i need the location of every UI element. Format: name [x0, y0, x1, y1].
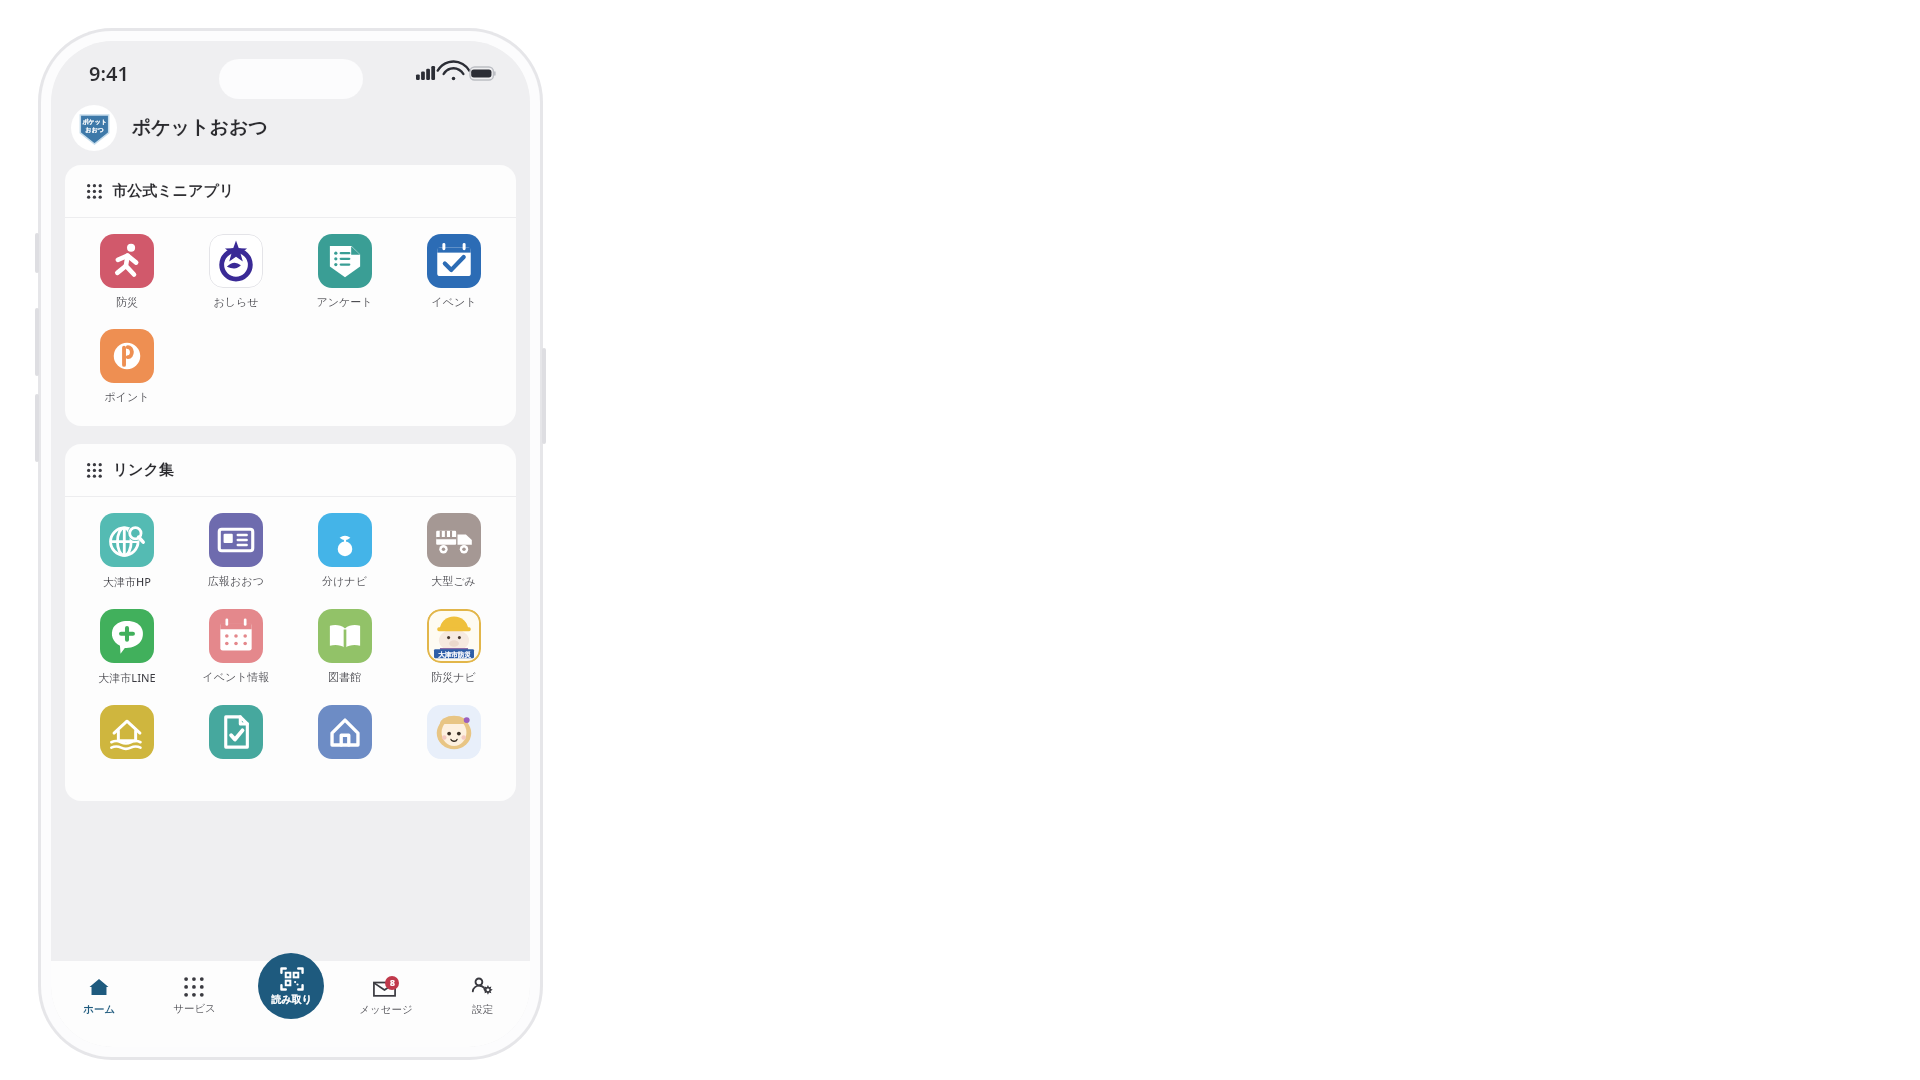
button[interactable]: アンケート [290, 232, 399, 311]
staticText: 設定 [472, 1003, 493, 1016]
button[interactable]: ポイント [73, 327, 181, 406]
staticText: 広報おおつ [208, 574, 264, 588]
button[interactable]: 大津市LINE [73, 607, 181, 687]
staticText: 大型ごみ [431, 574, 476, 588]
staticText: ポイント [104, 390, 150, 404]
button[interactable]: 図書館 [290, 607, 399, 686]
staticText: イベント [431, 295, 477, 309]
staticText: リンク集 [112, 461, 174, 480]
button[interactable]: ホーム [51, 961, 146, 1031]
button[interactable]: 8 [338, 961, 434, 1031]
button[interactable]: 大津市防災 [399, 607, 508, 686]
button[interactable]: サービス [146, 961, 242, 1031]
button[interactable]: イベント情報 [181, 607, 290, 686]
staticText: サービス [173, 1002, 216, 1015]
button[interactable] [399, 703, 508, 761]
staticText: 大津市LINE [98, 670, 156, 685]
button[interactable] [73, 703, 181, 761]
button[interactable]: 大型ごみ [399, 511, 508, 590]
staticText: おしらせ [213, 295, 259, 309]
staticText: おおつ [85, 126, 104, 134]
staticText: ポケットおおつ [131, 116, 268, 140]
button[interactable]: 分けナビ [290, 511, 399, 590]
staticText: 防災ナビ [431, 670, 476, 684]
button[interactable]: 読み取り [258, 953, 324, 1019]
staticText: 大津市HP [103, 574, 151, 589]
staticText: 分けナビ [322, 574, 367, 588]
button[interactable]: 大津市HP [73, 511, 181, 591]
button[interactable] [181, 703, 290, 761]
staticText: 8 [390, 977, 395, 989]
staticText: 9:41 [89, 60, 129, 87]
staticText: メッセージ [359, 1003, 413, 1016]
button[interactable]: 広報おおつ [181, 511, 290, 590]
staticText: 防災 [116, 295, 138, 309]
button[interactable] [290, 703, 399, 761]
staticText: アンケート [316, 295, 373, 309]
staticText: 図書館 [328, 670, 361, 684]
staticText: 市公式ミニアプリ [112, 182, 234, 201]
button[interactable]: イベント [399, 232, 508, 311]
staticText: ホーム [83, 1003, 115, 1016]
staticText: 大津市防災 [438, 651, 471, 659]
staticText: 読み取り [271, 993, 312, 1006]
button[interactable]: 防災 [73, 232, 181, 311]
button[interactable]: 設定 [434, 961, 530, 1031]
button[interactable]: おしらせ [181, 232, 290, 311]
staticText: イベント情報 [202, 670, 270, 684]
staticText: ポケット [82, 118, 107, 126]
